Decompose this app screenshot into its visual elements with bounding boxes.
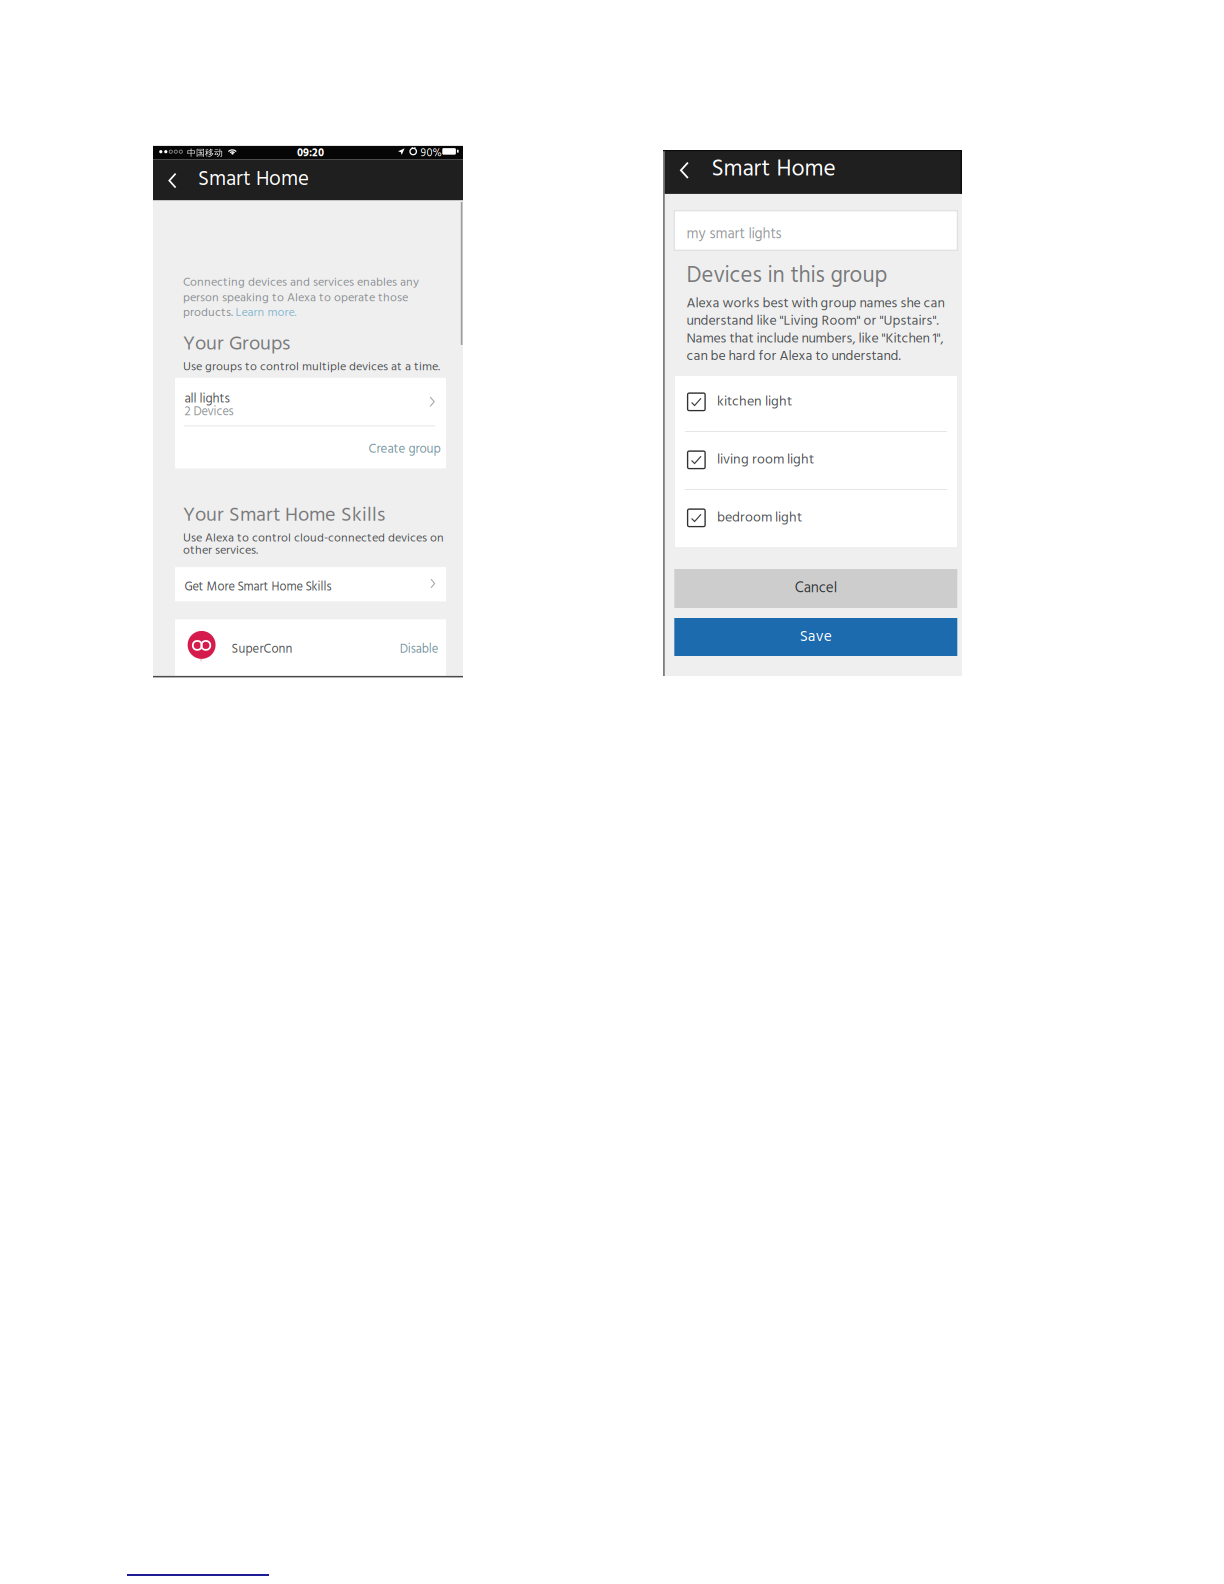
button[interactable]: Back xyxy=(153,159,191,200)
staticText: Smart Home xyxy=(711,151,835,188)
button[interactable]: Disable xyxy=(400,639,439,660)
staticText: Use groups to control multiple devices a… xyxy=(183,357,440,377)
button[interactable]: Back xyxy=(663,150,705,194)
button[interactable]: living room light xyxy=(675,434,957,492)
staticText: understand like "Living Room" or "Upstai… xyxy=(686,310,938,332)
staticText: Devices in this group xyxy=(686,258,887,294)
staticText: products. xyxy=(183,303,233,323)
staticText: Names that include numbers, like "Kitche… xyxy=(686,328,943,350)
staticText: other services. xyxy=(183,541,258,560)
staticText: can be hard for Alexa to understand. xyxy=(686,345,900,368)
button[interactable]: kitchen light xyxy=(675,376,957,434)
staticText: Your Groups xyxy=(183,328,290,360)
staticText: 2 Devices xyxy=(184,402,233,422)
button[interactable]: Learn more. xyxy=(235,303,296,323)
button[interactable]: bedroom light xyxy=(675,492,957,550)
staticText: my smart lights xyxy=(686,223,781,246)
staticText: 中国移动 xyxy=(187,147,223,158)
button[interactable]: Get More Smart Home Skills xyxy=(175,567,446,601)
staticText: 09:20 xyxy=(297,144,324,162)
button[interactable]: all lights xyxy=(175,378,446,425)
staticText: Save xyxy=(800,625,832,649)
staticText: Disable xyxy=(400,639,439,660)
staticText: person speaking to Alexa to operate thos… xyxy=(183,288,408,308)
staticText: Create group xyxy=(368,439,440,460)
staticText: 90% xyxy=(420,145,441,162)
button[interactable]: Create group xyxy=(175,425,446,468)
staticText: all lights xyxy=(184,389,229,410)
staticText: SuperConn xyxy=(231,639,292,660)
staticText: bedroom light xyxy=(717,507,802,529)
staticText: Learn more. xyxy=(235,303,296,323)
button[interactable]: Cancel xyxy=(674,569,957,608)
button[interactable]: Save xyxy=(674,618,957,656)
staticText: Use Alexa to control cloud-connected dev… xyxy=(183,528,444,548)
staticText: Your Smart Home Skills xyxy=(183,499,385,532)
staticText: Alexa works best with group names she ca… xyxy=(686,293,944,315)
staticText: kitchen light xyxy=(717,391,792,413)
staticText: Smart Home xyxy=(198,163,309,196)
staticText: Connecting devices and services enables … xyxy=(183,273,419,292)
staticText: living room light xyxy=(717,449,814,471)
staticText: Get More Smart Home Skills xyxy=(184,577,331,597)
staticText: Cancel xyxy=(795,576,837,600)
